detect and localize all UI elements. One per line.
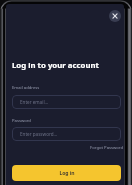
staticText: Log in <box>59 170 75 177</box>
staticText: Log in to your account <box>12 60 99 71</box>
button[interactable]: Close <box>109 10 121 22</box>
button[interactable]: Log in <box>12 165 121 181</box>
staticText: Enter email... <box>20 99 49 105</box>
staticText: Password <box>12 118 31 124</box>
button[interactable]: Forgot Password <box>90 145 124 151</box>
staticText: Email address <box>12 85 40 91</box>
staticText: Forgot Password <box>90 145 124 151</box>
button[interactable]: Enter email... <box>12 95 121 109</box>
staticText: Enter password... <box>20 131 58 137</box>
button[interactable]: Enter password... <box>12 127 121 141</box>
